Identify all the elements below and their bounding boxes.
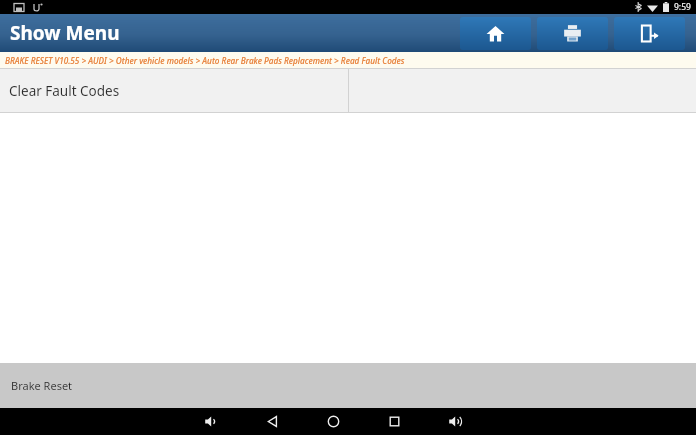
button[interactable]: Exit [614,17,685,50]
button[interactable]: Volume down [196,408,226,435]
button[interactable]: Volume up [440,408,470,435]
button[interactable]: Recents [379,408,409,435]
staticText: Brake Reset [11,378,73,393]
staticText: Clear Fault Codes [9,82,120,100]
button[interactable]: Clear Fault Codes [0,68,348,113]
button[interactable]: Home [318,408,348,435]
staticText: Show Menu [10,20,120,46]
button[interactable]: Home [460,17,531,50]
staticText: BRAKE RESET V10.55 > AUDI > Other vehicl… [5,55,405,66]
button[interactable]: Print [537,17,608,50]
button[interactable]: Back [257,408,287,435]
button[interactable]: Brake Reset [0,363,696,408]
staticText: 9:59 [674,1,691,13]
